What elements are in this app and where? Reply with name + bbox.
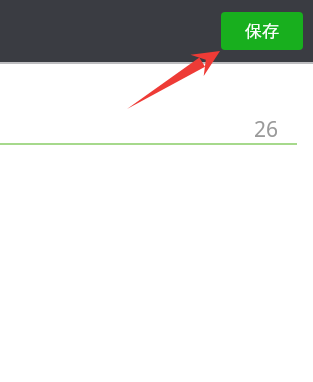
staticText: 保存 bbox=[245, 21, 279, 42]
button[interactable]: Save bbox=[221, 12, 303, 50]
button[interactable]: 26 bbox=[0, 113, 313, 145]
staticText: 26 bbox=[254, 115, 279, 144]
